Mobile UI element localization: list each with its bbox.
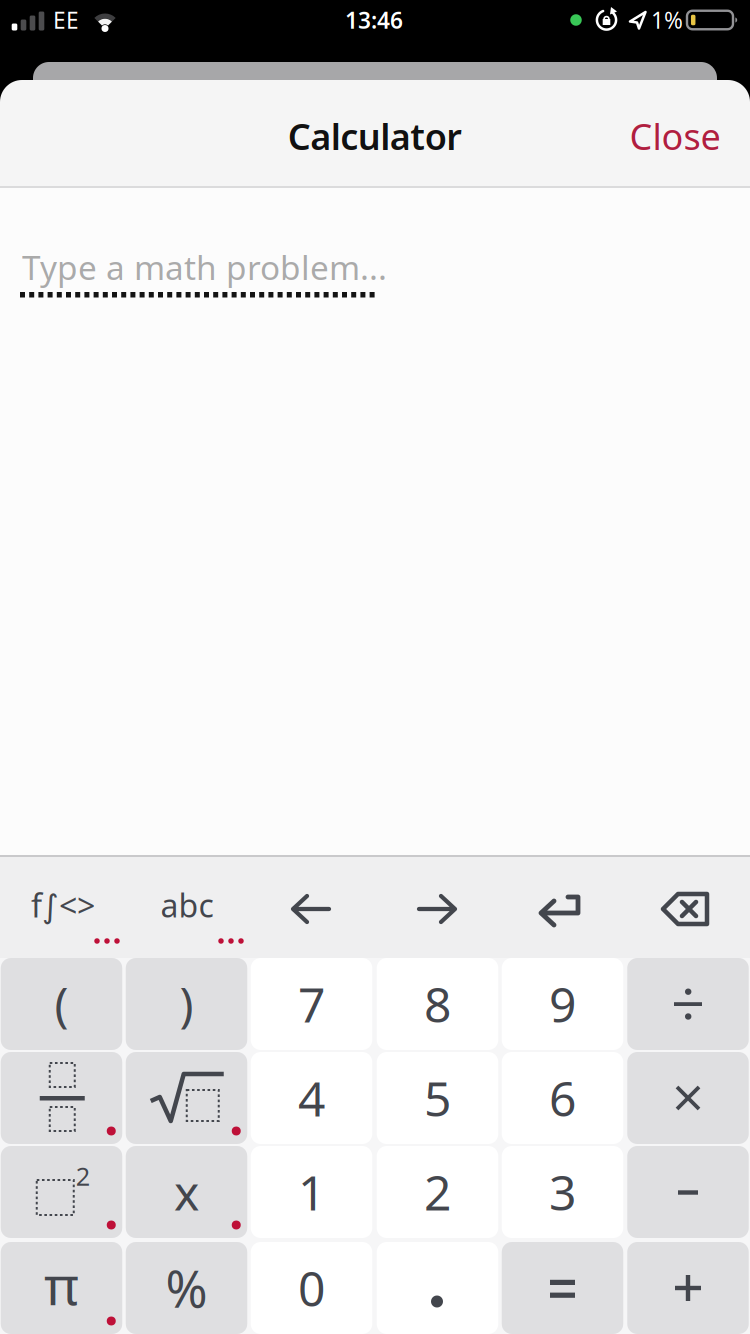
staticText: 3 xyxy=(549,1160,576,1224)
staticText: Close xyxy=(629,112,720,160)
staticText: ( xyxy=(54,973,68,1035)
staticText: Type a math problem... xyxy=(22,245,387,289)
button[interactable]: Decimal point xyxy=(377,1242,498,1334)
button[interactable]: abc xyxy=(132,865,242,945)
staticText: ) xyxy=(179,973,193,1035)
button[interactable]: % xyxy=(126,1242,247,1334)
staticText: 13:46 xyxy=(345,5,403,35)
button[interactable]: Close xyxy=(615,101,735,171)
button[interactable]: 8 xyxy=(377,958,498,1050)
staticText: 5 xyxy=(424,1066,451,1130)
staticText: f∫<> xyxy=(31,884,95,926)
staticText: 8 xyxy=(424,972,451,1036)
button[interactable]: 3 xyxy=(502,1146,623,1238)
staticText: 4 xyxy=(298,1066,325,1130)
button[interactable]: ( xyxy=(1,958,122,1050)
staticText: 7 xyxy=(298,972,325,1036)
button[interactable]: Divide xyxy=(627,958,749,1050)
staticText: % xyxy=(165,1254,207,1322)
staticText: π xyxy=(44,1249,79,1319)
staticText: 2 xyxy=(424,1160,451,1224)
button[interactable]: 4 xyxy=(251,1052,372,1144)
button[interactable]: Square xyxy=(1,1146,122,1238)
button[interactable]: Delete xyxy=(641,869,731,949)
staticText: 9 xyxy=(549,972,576,1036)
button[interactable]: 6 xyxy=(502,1052,623,1144)
button[interactable]: Equals xyxy=(502,1242,623,1334)
button[interactable]: f∫<> xyxy=(3,865,123,945)
button[interactable]: π xyxy=(1,1242,122,1334)
button[interactable]: ) xyxy=(126,958,247,1050)
staticText: 1% xyxy=(651,5,683,35)
staticText: 0 xyxy=(298,1256,325,1320)
staticText: Calculator xyxy=(288,112,462,160)
button[interactable]: 9 xyxy=(502,958,623,1050)
button[interactable]: 5 xyxy=(377,1052,498,1144)
button[interactable]: Multiply xyxy=(627,1052,749,1144)
button[interactable]: Return xyxy=(516,869,606,949)
button[interactable]: Move left xyxy=(266,869,356,949)
staticText: EE xyxy=(53,5,79,35)
button[interactable]: Move right xyxy=(392,869,482,949)
button[interactable]: x xyxy=(126,1146,247,1238)
button[interactable]: Plus xyxy=(627,1242,749,1334)
staticText: 2 xyxy=(76,1159,90,1193)
staticText: 1 xyxy=(298,1160,325,1224)
button[interactable]: 7 xyxy=(251,958,372,1050)
staticText: x xyxy=(174,1160,199,1224)
button[interactable]: 2 xyxy=(377,1146,498,1238)
button[interactable]: Minus xyxy=(627,1146,749,1238)
staticText: abc xyxy=(160,884,213,926)
staticText: 6 xyxy=(549,1066,576,1130)
button[interactable]: 0 xyxy=(251,1242,372,1334)
button[interactable]: Square root xyxy=(126,1052,247,1144)
button[interactable]: 1 xyxy=(251,1146,372,1238)
button[interactable]: Fraction xyxy=(1,1052,122,1144)
